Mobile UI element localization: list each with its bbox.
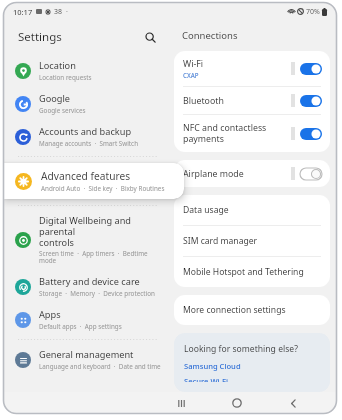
- button[interactable]: Bluetooth: [174, 87, 330, 114]
- staticText: More connection settings: [183, 304, 286, 316]
- staticText: Language and keyboard · Date and time: [39, 362, 161, 371]
- staticText: Data usage: [183, 204, 229, 216]
- staticText: Google services: [39, 106, 86, 115]
- staticText: Screen time · App timers · Bedtime mode: [39, 249, 162, 265]
- staticText: Location: [39, 59, 76, 72]
- button[interactable]: SIM card manager: [174, 226, 330, 256]
- staticText: Manage accounts · Smart Switch: [39, 139, 139, 148]
- button[interactable]: NFC and contactless payments toggle: [300, 128, 322, 140]
- button[interactable]: Airplane mode: [174, 160, 330, 187]
- staticText: General management: [39, 348, 134, 361]
- button[interactable]: NFC and contactless payments: [174, 115, 330, 152]
- staticText: Airplane mode: [183, 168, 244, 180]
- button[interactable]: More connection settings: [174, 295, 330, 325]
- button[interactable]: Search settings: [140, 27, 160, 47]
- staticText: 70%: [306, 7, 320, 17]
- button[interactable]: Accounts and backup: [4, 120, 170, 153]
- button[interactable]: Secure Wi-Fi: [184, 376, 229, 382]
- button[interactable]: Samsung Cloud: [184, 361, 241, 371]
- button[interactable]: Bluetooth toggle: [300, 95, 322, 107]
- staticText: Google: [39, 92, 71, 105]
- button[interactable]: Data usage: [174, 195, 330, 225]
- button[interactable]: Digital Wellbeing and parental controls: [4, 209, 170, 270]
- staticText: Secure Wi-Fi: [184, 376, 229, 382]
- button[interactable]: Back: [276, 392, 310, 414]
- staticText: Digital Wellbeing and parental controls: [39, 214, 162, 248]
- staticText: Advanced features: [41, 169, 131, 183]
- staticText: CXAP: [183, 71, 199, 79]
- staticText: Location requests: [39, 73, 92, 82]
- staticText: Apps: [39, 308, 61, 321]
- button[interactable]: Battery and device care: [4, 270, 170, 303]
- staticText: 38: [54, 7, 63, 17]
- staticText: ·: [66, 7, 68, 17]
- button[interactable]: Mobile Hotspot and Tethering: [174, 257, 330, 287]
- staticText: Settings: [18, 29, 62, 45]
- staticText: Mobile Hotspot and Tethering: [183, 266, 304, 278]
- staticText: Default apps · App settings: [39, 322, 122, 331]
- staticText: Storage · Memory · Device protection: [39, 289, 155, 298]
- button[interactable]: Airplane mode toggle: [300, 168, 322, 180]
- staticText: SIM card manager: [183, 235, 258, 247]
- staticText: Connections: [182, 29, 238, 42]
- staticText: Wi-Fi: [183, 58, 204, 70]
- staticText: Android Auto · Side key · Bixby Routines: [41, 184, 165, 193]
- staticText: Accounts and backup: [39, 125, 132, 138]
- staticText: Looking for something else?: [184, 343, 298, 355]
- button[interactable]: Recent apps: [164, 392, 198, 414]
- button[interactable]: Wi-Fi: [174, 51, 330, 86]
- button[interactable]: Location: [4, 54, 170, 87]
- staticText: NFC and contactless payments: [183, 122, 267, 145]
- button[interactable]: Advanced features: [4, 163, 184, 199]
- staticText: 10:17: [13, 7, 33, 17]
- staticText: Bluetooth: [183, 95, 224, 107]
- button[interactable]: Wi-Fi toggle: [300, 63, 322, 75]
- button[interactable]: General management: [4, 343, 170, 376]
- button[interactable]: Apps: [4, 303, 170, 336]
- staticText: Samsung Cloud: [184, 361, 241, 371]
- staticText: Battery and device care: [39, 275, 140, 288]
- button[interactable]: Home: [220, 392, 254, 414]
- button[interactable]: Google: [4, 87, 170, 120]
